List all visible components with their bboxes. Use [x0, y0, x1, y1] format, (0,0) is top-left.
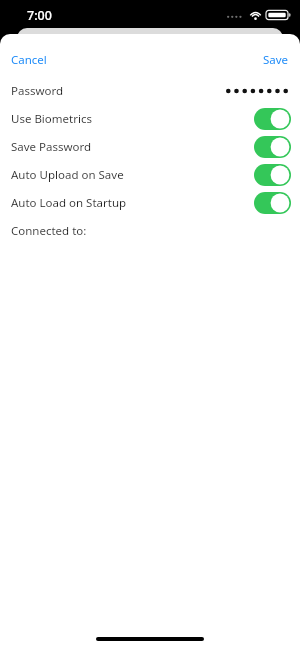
button[interactable]: Save — [263, 52, 289, 68]
button[interactable]: Auto Upload on Save — [0, 161, 300, 189]
staticText: Save — [263, 52, 289, 68]
button[interactable]: Save Password — [0, 133, 300, 161]
button[interactable]: Connected to: — [0, 217, 300, 245]
staticText: Save Password — [11, 139, 92, 155]
staticText: Auto Upload on Save — [11, 167, 124, 183]
button[interactable]: Toggle — [254, 192, 291, 214]
staticText: Use Biometrics — [11, 111, 92, 127]
staticText: Cancel — [11, 52, 47, 68]
staticText: Auto Load on Startup — [11, 195, 127, 211]
staticText: 7:00 — [27, 7, 52, 24]
button[interactable]: Toggle — [254, 108, 291, 130]
button[interactable]: Cancel — [11, 52, 47, 68]
button[interactable]: Use Biometrics — [0, 105, 300, 133]
staticText: Connected to: — [11, 223, 87, 239]
button[interactable]: Toggle — [254, 164, 291, 186]
button[interactable]: Password — [0, 77, 300, 105]
button[interactable]: Toggle — [254, 136, 291, 158]
button[interactable]: Auto Load on Startup — [0, 189, 300, 217]
staticText: Password — [11, 83, 64, 99]
